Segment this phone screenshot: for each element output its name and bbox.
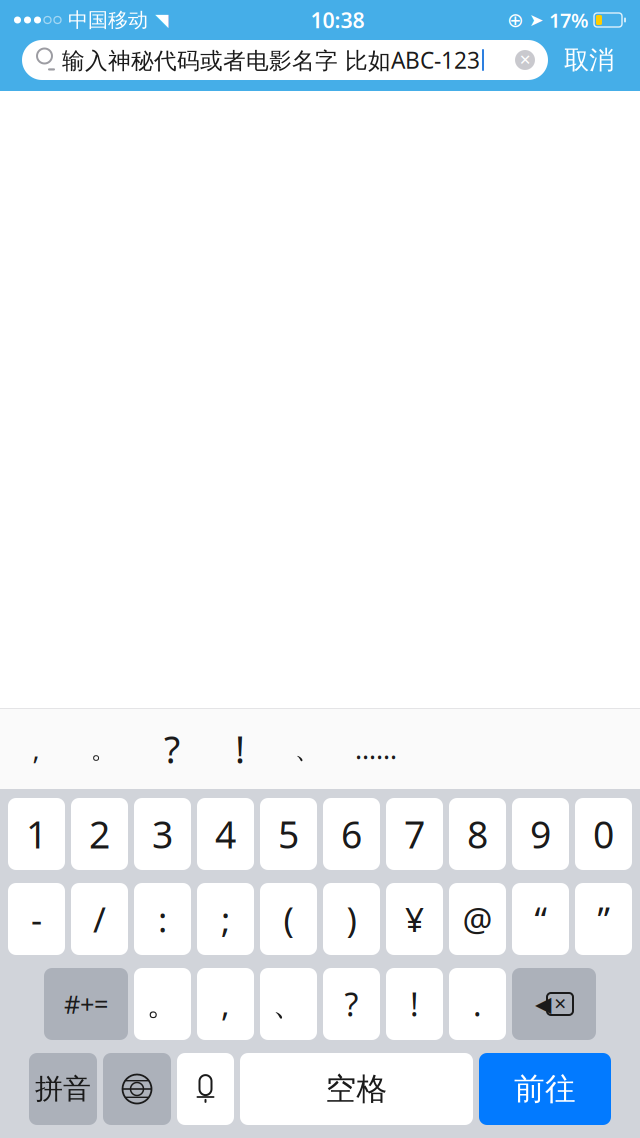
staticText: 。 bbox=[146, 984, 178, 1024]
staticText: ) bbox=[346, 896, 356, 942]
staticText: 输入神秘代码或者电影名字 比如ABC-123 bbox=[62, 45, 480, 75]
staticText: : bbox=[158, 896, 167, 942]
button[interactable]: ? bbox=[138, 709, 206, 789]
staticText: ; bbox=[221, 896, 230, 942]
staticText: ( bbox=[283, 896, 293, 942]
staticText: 中国移动 bbox=[68, 8, 148, 32]
staticText: @ bbox=[462, 897, 492, 941]
staticText: 3 bbox=[152, 809, 173, 859]
staticText: 5 bbox=[278, 809, 299, 859]
staticText: ? bbox=[164, 724, 180, 774]
button[interactable]: 。 bbox=[134, 968, 191, 1040]
staticText: 、 bbox=[294, 733, 321, 765]
staticText: - bbox=[31, 896, 42, 942]
staticText: 9 bbox=[530, 809, 551, 859]
button[interactable]: 0 bbox=[575, 798, 632, 870]
button[interactable]: , bbox=[197, 968, 254, 1040]
button[interactable]: 。 bbox=[70, 709, 138, 789]
button[interactable]: Next keyboard bbox=[103, 1053, 171, 1125]
button[interactable]: @ bbox=[449, 883, 506, 955]
button[interactable]: ! bbox=[386, 968, 443, 1040]
button[interactable]: 7 bbox=[386, 798, 443, 870]
staticText: 2 bbox=[89, 809, 110, 859]
button[interactable]: ! bbox=[206, 709, 274, 789]
button[interactable]: Clear text bbox=[508, 40, 542, 80]
staticText: 拼音 bbox=[35, 1072, 91, 1106]
button[interactable]: Delete bbox=[512, 968, 596, 1040]
button[interactable]: …… bbox=[342, 709, 410, 789]
button[interactable]: 、 bbox=[260, 968, 317, 1040]
staticText: 10:38 bbox=[310, 6, 364, 34]
button[interactable]: / bbox=[71, 883, 128, 955]
staticText: 、 bbox=[272, 984, 304, 1024]
staticText: ✕ bbox=[553, 995, 566, 1013]
staticText: ? bbox=[344, 983, 358, 1025]
button[interactable]: “ bbox=[512, 883, 569, 955]
button[interactable]: . bbox=[449, 968, 506, 1040]
button[interactable]: ) bbox=[323, 883, 380, 955]
button[interactable]: , bbox=[2, 709, 70, 789]
button[interactable]: 8 bbox=[449, 798, 506, 870]
button[interactable]: 5 bbox=[260, 798, 317, 870]
button[interactable]: 9 bbox=[512, 798, 569, 870]
staticText: ➤ bbox=[529, 10, 544, 30]
button[interactable]: 6 bbox=[323, 798, 380, 870]
button[interactable]: Dictation bbox=[177, 1053, 234, 1125]
button[interactable]: 输入神秘代码或者电影名字 比如ABC-123 bbox=[22, 40, 548, 80]
staticText: ◥ bbox=[155, 10, 168, 30]
staticText: 4 bbox=[215, 809, 236, 859]
staticText: , bbox=[221, 983, 230, 1025]
staticText: 6 bbox=[341, 809, 362, 859]
button[interactable]: 3 bbox=[134, 798, 191, 870]
staticText: 7 bbox=[404, 809, 425, 859]
staticText: , bbox=[32, 731, 39, 767]
staticText: 17% bbox=[549, 7, 589, 33]
staticText: ✕ bbox=[519, 52, 531, 68]
button[interactable]: - bbox=[8, 883, 65, 955]
button[interactable]: 、 bbox=[274, 709, 342, 789]
staticText: ¥ bbox=[405, 897, 424, 941]
staticText: 取消 bbox=[564, 44, 614, 75]
staticText: 8 bbox=[467, 809, 488, 859]
staticText: ◀ bbox=[535, 992, 551, 1016]
staticText: ” bbox=[597, 896, 609, 942]
staticText: 。 bbox=[90, 733, 117, 765]
staticText: 1 bbox=[26, 809, 47, 859]
staticText: #+= bbox=[64, 987, 108, 1021]
staticText: ! bbox=[410, 983, 419, 1025]
button[interactable]: 拼音 bbox=[29, 1053, 97, 1125]
button[interactable]: #+= bbox=[44, 968, 128, 1040]
button[interactable]: ¥ bbox=[386, 883, 443, 955]
staticText: / bbox=[93, 896, 106, 942]
staticText: 前往 bbox=[514, 1070, 576, 1108]
button[interactable]: 1 bbox=[8, 798, 65, 870]
staticText: ⊕ bbox=[507, 9, 524, 31]
staticText: …… bbox=[355, 731, 397, 767]
button[interactable]: ; bbox=[197, 883, 254, 955]
button[interactable]: ” bbox=[575, 883, 632, 955]
button[interactable]: ( bbox=[260, 883, 317, 955]
staticText: 0 bbox=[593, 809, 614, 859]
staticText: . bbox=[473, 983, 482, 1025]
button[interactable]: 4 bbox=[197, 798, 254, 870]
button[interactable]: 前往 bbox=[479, 1053, 611, 1125]
button[interactable]: : bbox=[134, 883, 191, 955]
staticText: “ bbox=[534, 896, 546, 942]
button[interactable]: 取消 bbox=[548, 40, 630, 80]
button[interactable]: 2 bbox=[71, 798, 128, 870]
staticText: ! bbox=[235, 724, 245, 774]
staticText: 空格 bbox=[325, 1070, 387, 1108]
button[interactable]: 空格 bbox=[240, 1053, 473, 1125]
button[interactable]: ? bbox=[323, 968, 380, 1040]
